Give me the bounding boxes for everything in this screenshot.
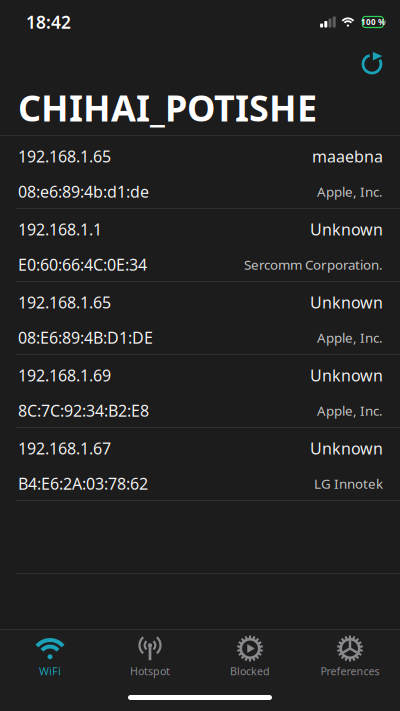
staticText: Unknown xyxy=(310,219,383,240)
staticText: Sercomm Corporation. xyxy=(244,256,383,273)
button[interactable]: 192.168.1.67 xyxy=(0,428,400,500)
button[interactable]: 192.168.1.69 xyxy=(0,355,400,427)
staticText: WiFi xyxy=(39,664,61,678)
staticText: Unknown xyxy=(310,292,383,313)
button[interactable]: WiFi xyxy=(0,630,100,682)
staticText: Hotspot xyxy=(130,664,170,678)
staticText: CHIHAI_POTISHE xyxy=(18,84,317,131)
staticText: E0:60:66:4C:0E:34 xyxy=(18,254,147,275)
button[interactable]: Refresh xyxy=(351,42,395,82)
staticText: B4:E6:2A:03:78:62 xyxy=(18,473,148,494)
staticText: 192.168.1.65 xyxy=(18,292,111,313)
button[interactable]: Preferences xyxy=(300,630,400,682)
staticText: LG Innotek xyxy=(314,475,383,492)
staticText: 08:E6:89:4B:D1:DE xyxy=(18,327,153,348)
staticText: 192.168.1.69 xyxy=(18,365,111,386)
staticText: Apple, Inc. xyxy=(317,402,383,419)
button[interactable]: Blocked xyxy=(200,630,300,682)
staticText: 192.168.1.65 xyxy=(18,146,111,167)
staticText: maaebna xyxy=(312,146,383,167)
staticText: 100 % xyxy=(361,17,385,27)
staticText: Unknown xyxy=(310,438,383,459)
button[interactable]: 192.168.1.65 xyxy=(0,136,400,208)
staticText: 18:42 xyxy=(26,10,71,33)
staticText: 08:e6:89:4b:d1:de xyxy=(18,181,149,202)
staticText: Apple, Inc. xyxy=(317,329,383,346)
button[interactable]: Hotspot xyxy=(100,630,200,682)
staticText: Blocked xyxy=(230,664,270,678)
staticText: 192.168.1.67 xyxy=(18,438,111,459)
staticText: Preferences xyxy=(320,664,379,678)
staticText: Apple, Inc. xyxy=(317,183,383,200)
staticText: Unknown xyxy=(310,365,383,386)
staticText: 8C:7C:92:34:B2:E8 xyxy=(18,400,149,421)
staticText: 192.168.1.1 xyxy=(18,219,102,240)
button[interactable]: 192.168.1.1 xyxy=(0,209,400,281)
button[interactable]: 192.168.1.65 xyxy=(0,282,400,354)
